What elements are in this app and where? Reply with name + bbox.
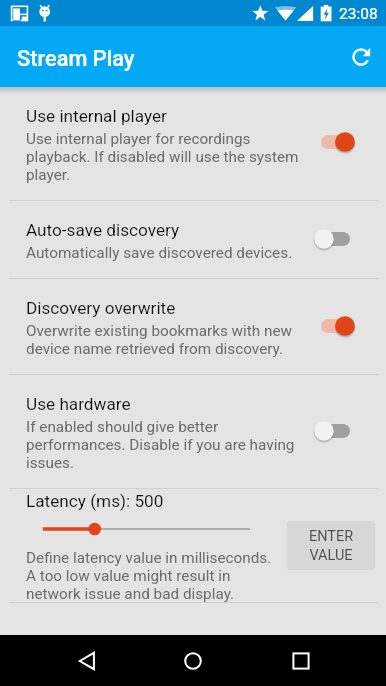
- staticText: 23:08: [339, 5, 378, 23]
- button[interactable]: Auto-save discovery: [0, 201, 386, 278]
- staticText: ENTER VALUE: [287, 528, 375, 564]
- staticText: Discovery overwrite: [26, 298, 176, 318]
- button[interactable]: Refresh: [339, 35, 383, 79]
- button[interactable]: Off: [315, 420, 359, 442]
- staticText: Overwrite existing bookmarks with new de…: [26, 322, 304, 358]
- staticText: Latency (ms): 500: [26, 491, 164, 511]
- staticText: Use internal player: [26, 106, 167, 126]
- button[interactable]: Use internal player: [0, 87, 386, 200]
- button[interactable]: Use hardware: [0, 375, 386, 488]
- staticText: Automatically save discovered devices.: [26, 244, 293, 262]
- staticText: Use hardware: [26, 394, 131, 414]
- button[interactable]: Discovery overwrite: [0, 279, 386, 374]
- staticText: Stream Play: [17, 46, 135, 72]
- button[interactable]: On: [315, 131, 359, 153]
- staticText: If enabled should give better performanc…: [26, 418, 304, 472]
- staticText: Use internal player for recordings playb…: [26, 130, 304, 184]
- button[interactable]: ENTER VALUE: [287, 521, 375, 570]
- staticText: Define latency value in milliseconds. A …: [26, 549, 278, 603]
- button[interactable]: On: [315, 315, 359, 337]
- button[interactable]: Back: [51, 635, 122, 686]
- button[interactable]: Recent apps: [265, 635, 336, 686]
- staticText: Auto-save discovery: [26, 220, 180, 240]
- button[interactable]: Home: [157, 635, 228, 686]
- button[interactable]: Off: [315, 228, 359, 250]
